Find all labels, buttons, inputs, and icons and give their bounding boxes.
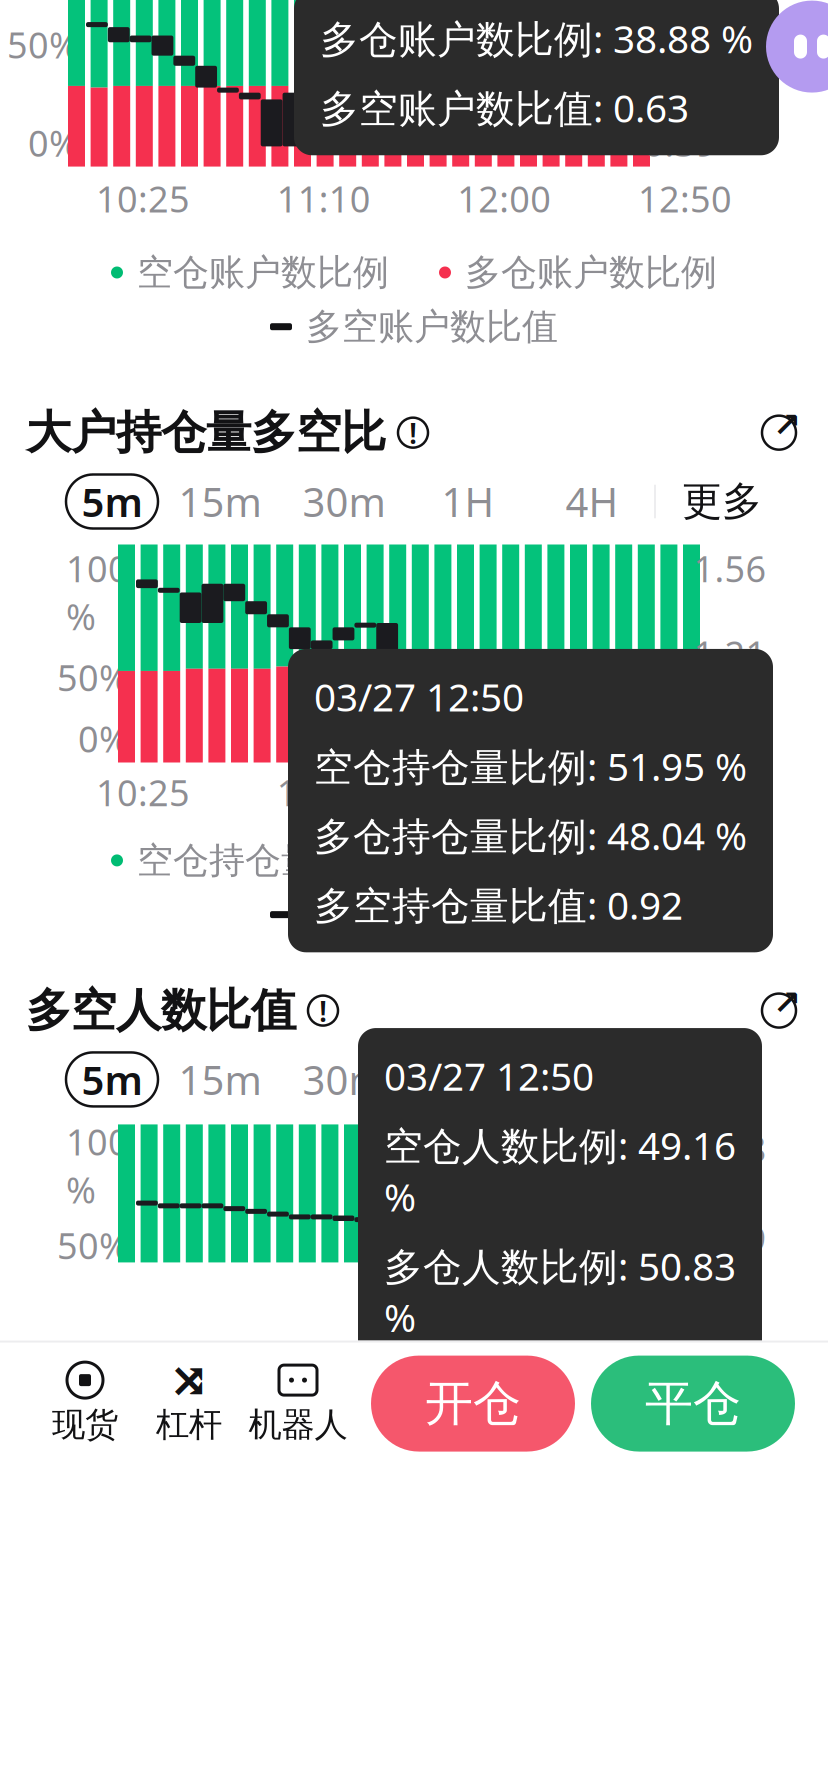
staticText: 03/27 12:50 [384, 1050, 594, 1101]
staticText: 15m [178, 475, 261, 528]
staticText: 多空人数比值 [26, 983, 296, 1038]
staticText: 50% [57, 1221, 129, 1269]
staticText: 5m [81, 475, 142, 528]
staticText: 0.39 [643, 119, 716, 167]
staticText: 多空账户数比值: 0.63 [320, 82, 689, 133]
staticText: 5m [81, 1053, 142, 1106]
button[interactable]: Expand chart [756, 988, 802, 1034]
button[interactable]: 5m [66, 474, 158, 528]
staticText: 4H [565, 1053, 618, 1106]
staticText: 11:10 [277, 768, 371, 816]
staticText: 0.79 [693, 1215, 766, 1262]
staticText: 15m [178, 1053, 261, 1106]
button[interactable]: 4H [530, 474, 654, 528]
staticText: 空仓持仓量比例 [306, 892, 558, 937]
button[interactable]: Info [398, 413, 428, 452]
staticText: 50% [57, 653, 129, 701]
staticText: 1.56 [693, 544, 766, 592]
button[interactable]: 15m [158, 474, 282, 528]
staticText: 12:50 [638, 175, 732, 222]
staticText: 多空持仓量比值: 0.92 [314, 879, 683, 930]
button[interactable]: ⤨ [137, 1352, 241, 1456]
button[interactable]: 开仓 [371, 1356, 575, 1452]
staticText: 30m [302, 475, 385, 528]
button[interactable]: 现货 [33, 1352, 137, 1456]
button[interactable]: 30m [282, 474, 406, 528]
staticText: 03/27 12:50 [314, 671, 524, 722]
staticText: ! [409, 413, 417, 452]
staticText: 50% [7, 21, 79, 68]
staticText: ! [319, 991, 327, 1030]
button[interactable]: 平仓 [591, 1356, 795, 1452]
staticText: 10:25 [96, 768, 190, 816]
staticText: 0.52 [643, 21, 716, 68]
staticText: 100% [66, 544, 129, 640]
staticText: 12:00 [457, 175, 551, 222]
staticText: ↗ [773, 984, 801, 1021]
staticText: 12:50 [638, 768, 732, 816]
staticText: 12:00 [457, 768, 551, 816]
staticText: 0.87 [693, 715, 766, 762]
staticText: 大户持仓量多空比 [26, 405, 386, 460]
staticText: ⤨ [169, 1353, 209, 1408]
button[interactable]: 4H [530, 1052, 654, 1106]
button[interactable]: 30m [282, 1052, 406, 1106]
button[interactable]: 更多 [656, 474, 762, 528]
button[interactable]: Expand chart [756, 410, 802, 456]
staticText: 空仓持仓量比例 [137, 838, 389, 882]
staticText: 1H [441, 1053, 494, 1106]
staticText: 空仓人数比例: 49.16 % [384, 1119, 736, 1222]
staticText: 0% [28, 119, 79, 167]
staticText: 多仓人数比例: 50.83 % [384, 1240, 736, 1343]
button[interactable]: 1H [406, 474, 530, 528]
staticText: 1.08 [693, 1124, 766, 1172]
button[interactable]: 1H [406, 1052, 530, 1106]
staticText: 开仓 [425, 1374, 521, 1433]
staticText: 10:25 [96, 175, 190, 222]
staticText: 11:10 [277, 175, 371, 222]
staticText: 30m [302, 1053, 385, 1106]
staticText: ↗ [773, 406, 801, 443]
staticText: 100% [66, 1118, 129, 1213]
staticText: 多仓持仓量比例 [465, 838, 717, 882]
staticText: 杠杆 [156, 1404, 222, 1445]
staticText: 空仓持仓量比例: 51.95 % [314, 740, 747, 792]
button[interactable]: Info [308, 991, 338, 1030]
staticText: 多仓账户数比例: 38.88 % [320, 13, 753, 64]
staticText: 机器人 [248, 1404, 347, 1445]
staticText: 1.21 [693, 630, 766, 677]
staticText: 多空账户数比值 [306, 305, 558, 349]
staticText: 更多 [682, 477, 762, 526]
button[interactable]: 机器人 [241, 1352, 355, 1456]
staticText: 4H [565, 475, 618, 528]
button[interactable]: 5m [66, 1052, 158, 1106]
staticText: 平仓 [645, 1374, 741, 1433]
staticText: 多仓持仓量比例: 48.04 % [314, 810, 747, 861]
staticText: 0% [78, 715, 129, 762]
staticText: 空仓账户数比例 [137, 250, 389, 295]
staticText: 多仓账户数比例 [465, 250, 717, 295]
button[interactable]: 15m [158, 1052, 282, 1106]
staticText: 现货 [52, 1404, 118, 1445]
staticText: 1H [441, 475, 494, 528]
